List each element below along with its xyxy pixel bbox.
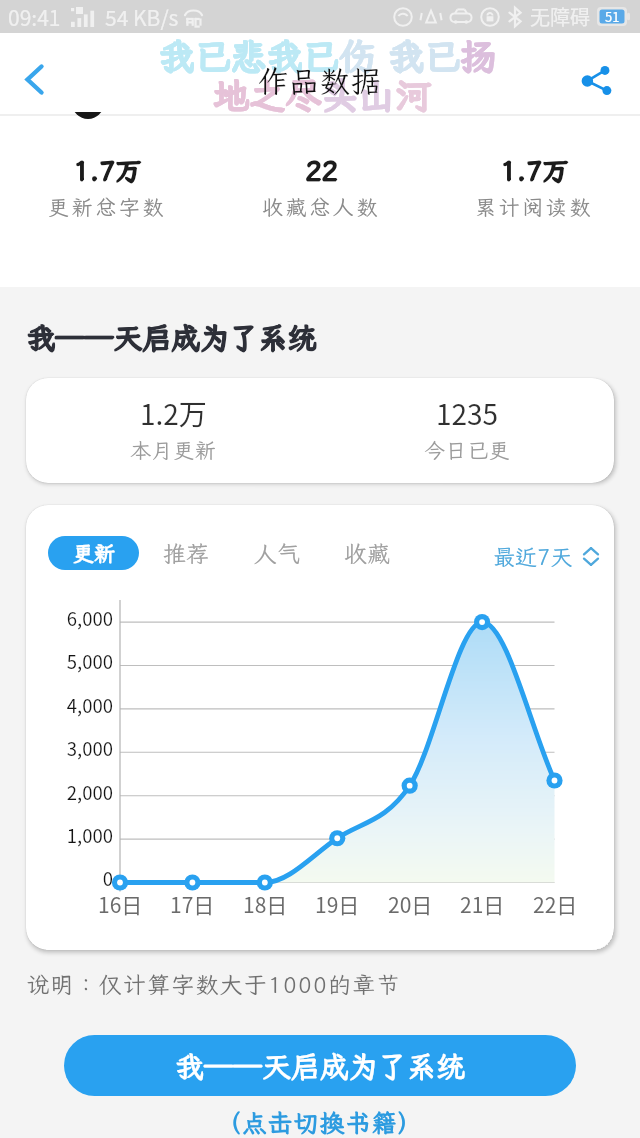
staticText: 我——天启成为了系统 bbox=[175, 1047, 466, 1085]
staticText: 0 bbox=[102, 865, 113, 891]
staticText: 2,000 bbox=[66, 779, 113, 805]
button[interactable]: 收藏 bbox=[344, 536, 390, 570]
staticText: 1.7万 bbox=[500, 152, 569, 188]
staticText: 54 KB/s bbox=[105, 2, 179, 32]
staticText: 我——天启成为了系统 bbox=[26, 319, 317, 357]
staticText: 伤 我已 bbox=[339, 33, 460, 80]
staticText: 22 bbox=[306, 152, 339, 188]
staticText: 1.7万 bbox=[73, 153, 142, 189]
staticText: 我——天启成为了系统 bbox=[26, 318, 317, 356]
staticText: 09:41 bbox=[8, 2, 61, 32]
staticText: 头山 bbox=[322, 72, 395, 119]
staticText: 22日 bbox=[533, 889, 578, 919]
staticText: 无障碍 bbox=[530, 2, 590, 31]
button[interactable]: （点击切换书籍） bbox=[0, 1106, 640, 1138]
staticText: 51 bbox=[605, 7, 620, 26]
staticText: 我已悲我已 bbox=[158, 33, 339, 80]
staticText: 18日 bbox=[243, 889, 288, 919]
button[interactable]: 1.2万 bbox=[26, 378, 614, 483]
staticText: 地之尽 bbox=[213, 71, 322, 118]
button[interactable]: 推荐 bbox=[163, 536, 209, 570]
staticText: 1.7万 bbox=[501, 152, 570, 188]
staticText: 河 bbox=[395, 72, 432, 119]
staticText: 6,000 bbox=[66, 605, 113, 631]
staticText: 09:41 bbox=[8, 2, 61, 32]
staticText: 更新总字数 bbox=[48, 193, 166, 221]
staticText: 1,000 bbox=[66, 822, 113, 848]
button[interactable]: Share bbox=[573, 57, 619, 103]
staticText: 19日 bbox=[315, 889, 360, 919]
staticText: 21日 bbox=[460, 889, 505, 919]
staticText: 1.7万 bbox=[74, 152, 143, 188]
staticText: 伤 我已 bbox=[340, 32, 461, 79]
button[interactable]: Back bbox=[12, 57, 56, 101]
staticText: 54 KB/s bbox=[105, 2, 179, 32]
staticText: 17日 bbox=[170, 889, 215, 919]
staticText: 扬 bbox=[461, 32, 498, 79]
staticText: 河 bbox=[396, 71, 433, 118]
button[interactable]: 人气 bbox=[254, 536, 300, 570]
staticText: 22 bbox=[305, 152, 338, 188]
staticText: 3,000 bbox=[66, 735, 113, 761]
staticText: 我已悲我已 bbox=[159, 32, 340, 79]
staticText: 4,000 bbox=[66, 692, 113, 718]
staticText: 收藏总人数 bbox=[262, 193, 380, 221]
staticText: 人气 bbox=[254, 538, 300, 568]
staticText: 本月更新 bbox=[130, 436, 217, 464]
staticText: 扬 bbox=[460, 32, 497, 79]
staticText: 51 bbox=[605, 7, 620, 26]
staticText: 说明：仅计算字数大于1000的章节 bbox=[26, 969, 401, 999]
staticText: 收藏 bbox=[344, 538, 390, 568]
staticText: 扬 bbox=[460, 33, 497, 80]
staticText: 作品数据 bbox=[258, 61, 382, 101]
staticText: 1.7万 bbox=[73, 152, 142, 188]
staticText: （点击切换书籍） bbox=[216, 1106, 424, 1138]
staticText: 地之尽 bbox=[213, 72, 322, 119]
staticText: 无障碍 bbox=[530, 2, 590, 31]
staticText: 1.2万 bbox=[140, 393, 207, 434]
staticText: 我——天启成为了系统 bbox=[27, 318, 318, 356]
staticText: 20日 bbox=[388, 889, 433, 919]
staticText: 头山 bbox=[322, 71, 395, 118]
staticText: 今日已更 bbox=[424, 436, 511, 464]
staticText: 最近7天 bbox=[493, 542, 573, 571]
staticText: 22 bbox=[305, 153, 338, 189]
staticText: 累计阅读数 bbox=[475, 193, 593, 221]
staticText: 16日 bbox=[98, 889, 143, 919]
button[interactable]: 我——天启成为了系统 bbox=[64, 1035, 576, 1096]
button[interactable]: 最近7天 bbox=[493, 541, 599, 571]
staticText: 推荐 bbox=[163, 538, 209, 568]
staticText: 1.7万 bbox=[500, 153, 569, 189]
staticText: 更新 bbox=[73, 539, 115, 567]
staticText: 河 bbox=[395, 71, 432, 118]
staticText: 头山 bbox=[323, 71, 396, 118]
staticText: 5,000 bbox=[66, 648, 113, 674]
staticText: 我已悲我已 bbox=[158, 32, 339, 79]
staticText: 地之尽 bbox=[214, 71, 323, 118]
staticText: 1235 bbox=[436, 393, 499, 434]
button[interactable]: 更新 bbox=[48, 536, 139, 570]
staticText: 伤 我已 bbox=[339, 32, 460, 79]
